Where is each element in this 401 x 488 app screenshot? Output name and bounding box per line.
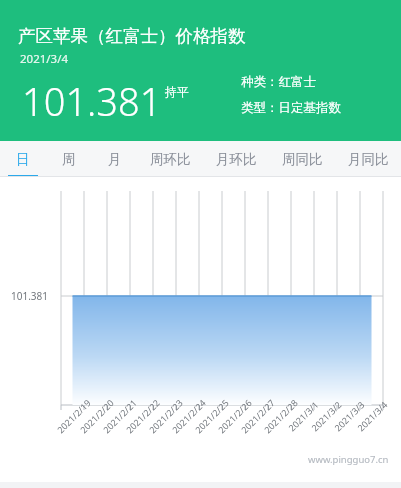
staticText: 2021/3/2 <box>308 398 344 434</box>
staticText: www.pingguo7.cn <box>308 453 389 466</box>
staticText: 2021/3/4 <box>354 398 390 434</box>
staticText: 周环比 <box>150 151 191 168</box>
button[interactable]: 周 <box>46 141 92 177</box>
staticText: 2021/2/20 <box>77 397 116 435</box>
staticText: 2021/2/24 <box>169 397 208 435</box>
staticText: 月 <box>108 151 122 168</box>
button[interactable]: 周同比 <box>269 141 335 177</box>
staticText: 类型：日定基指数 <box>241 100 341 116</box>
staticText: 2021/3/1 <box>285 398 321 434</box>
button[interactable]: 日 <box>0 141 46 177</box>
button[interactable]: 月环比 <box>203 141 269 177</box>
staticText: 2021/2/27 <box>238 397 277 435</box>
staticText: 101.381 <box>11 289 48 303</box>
staticText: 日 <box>16 151 30 168</box>
staticText: 2021/2/25 <box>192 397 231 435</box>
staticText: 2021/3/3 <box>331 398 367 434</box>
staticText: 月同比 <box>348 151 389 168</box>
button[interactable]: 月 <box>92 141 137 177</box>
staticText: 月环比 <box>216 151 257 168</box>
button[interactable]: 月同比 <box>335 141 401 177</box>
staticText: 产区苹果（红富士）价格指数 <box>18 25 246 47</box>
staticText: 2021/2/19 <box>54 397 93 435</box>
staticText: 持平 <box>165 84 189 99</box>
staticText: 2021/2/23 <box>146 397 185 435</box>
button[interactable]: 周环比 <box>137 141 203 177</box>
staticText: 101.381 <box>22 75 162 127</box>
staticText: 周同比 <box>282 151 323 168</box>
staticText: 2021/2/26 <box>215 397 254 435</box>
staticText: 2021/2/21 <box>100 397 139 435</box>
staticText: 种类：红富士 <box>241 74 316 90</box>
staticText: 周 <box>62 151 76 168</box>
staticText: 2021/3/4 <box>20 51 69 67</box>
staticText: 2021/2/28 <box>261 397 300 435</box>
staticText: 2021/2/22 <box>123 397 162 435</box>
